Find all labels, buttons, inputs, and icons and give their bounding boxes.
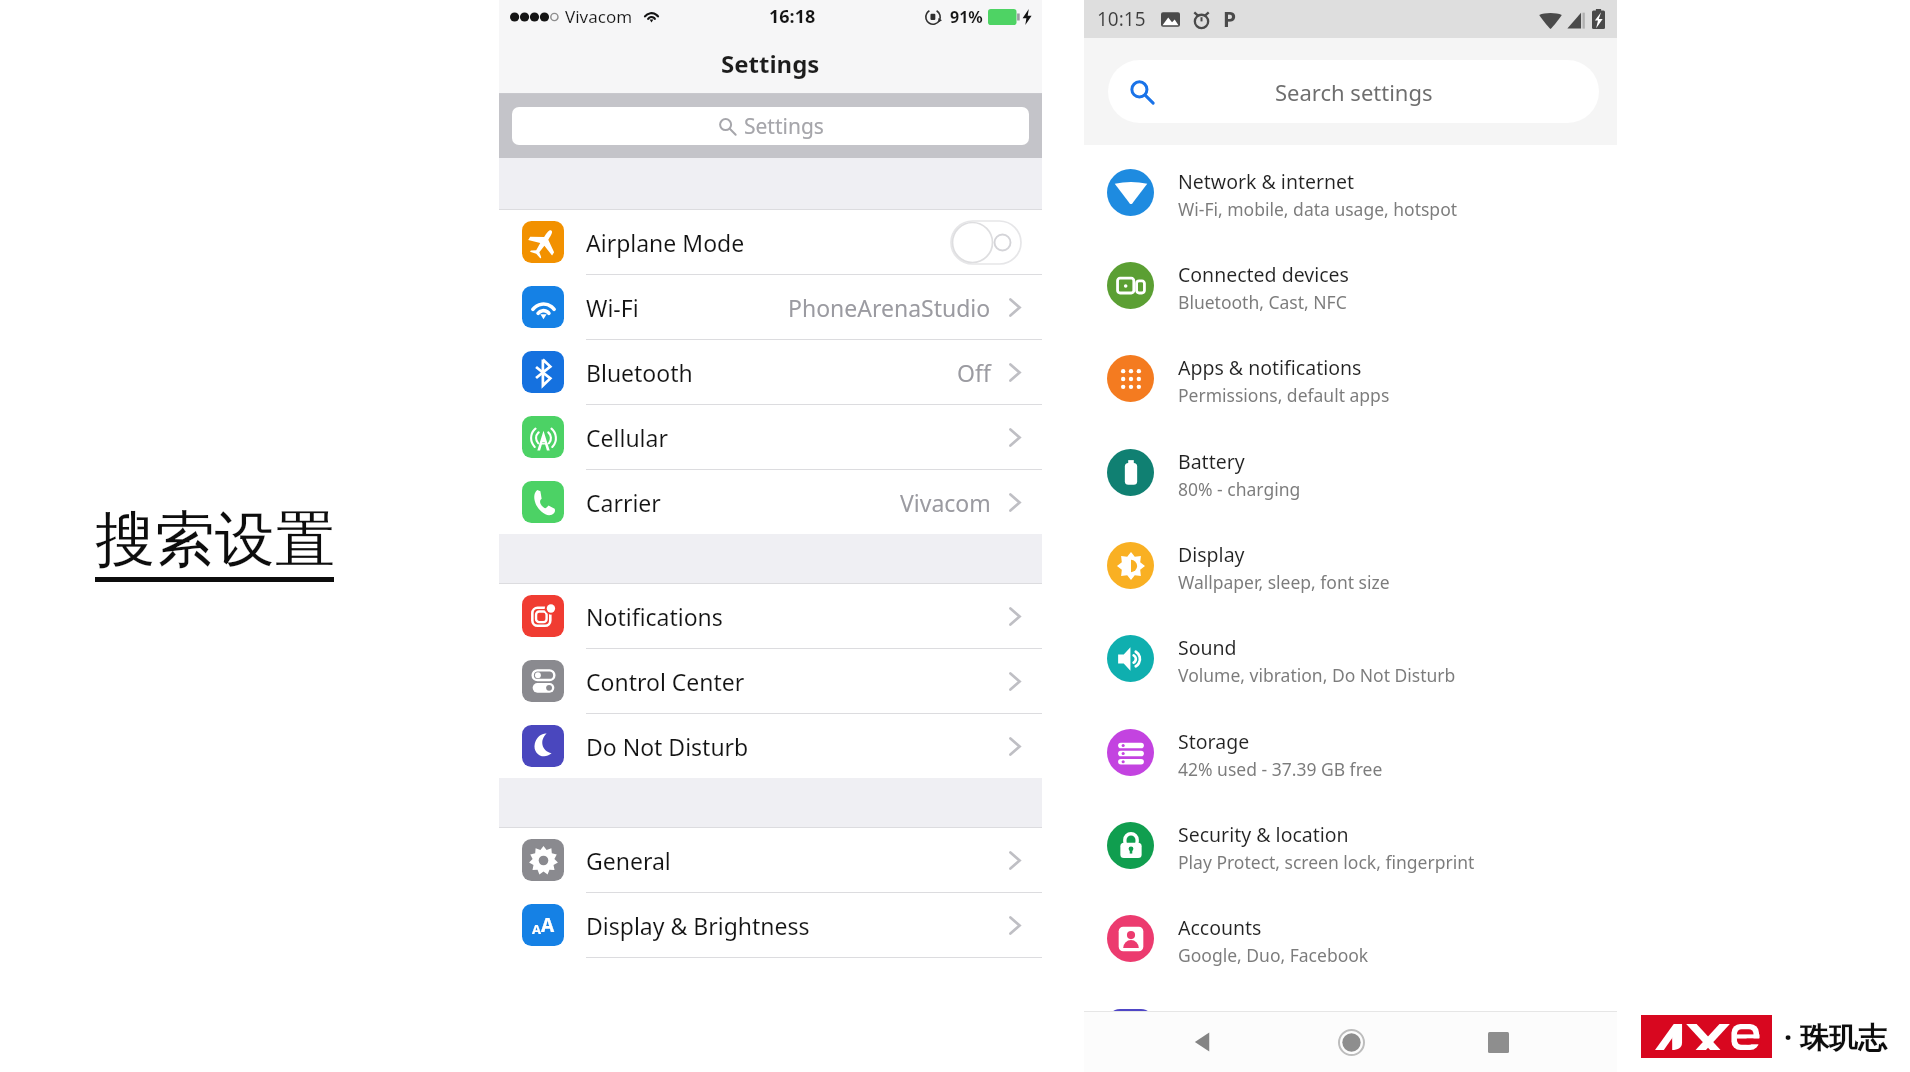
button[interactable]: A <box>499 893 1042 958</box>
staticText: Wallpaper, sleep, font size <box>1178 570 1390 594</box>
button[interactable]: Recents <box>1469 1013 1527 1071</box>
staticText: Sound <box>1178 634 1237 661</box>
staticText: Storage <box>1178 728 1250 755</box>
button[interactable]: Airplane Mode <box>499 210 1042 275</box>
staticText: Connected devices <box>1178 261 1349 288</box>
staticText: Airplane Mode <box>586 227 745 258</box>
staticText: Permissions, default apps <box>1178 383 1390 407</box>
button[interactable]: Connected devices <box>1084 239 1617 332</box>
staticText: Bluetooth, Cast, NFC <box>1178 290 1347 314</box>
staticText: A <box>532 920 541 938</box>
staticText: Wi-Fi, mobile, data usage, hotspot <box>1178 197 1458 221</box>
staticText: Off <box>957 357 991 388</box>
staticText: P <box>1223 5 1237 34</box>
button[interactable]: Notifications <box>499 584 1042 649</box>
button[interactable]: Display <box>1084 519 1617 612</box>
staticText: PhoneArenaStudio <box>788 292 991 323</box>
staticText: Security & location <box>1178 821 1349 848</box>
staticText: Apps & notifications <box>1178 354 1362 381</box>
staticText: Control Center <box>586 666 745 697</box>
button[interactable]: Back <box>1174 1013 1232 1071</box>
staticText: 91% <box>950 6 983 28</box>
staticText: Carrier <box>586 487 661 518</box>
staticText: Google, Duo, Facebook <box>1178 943 1369 967</box>
staticText: Search settings <box>1275 77 1433 107</box>
staticText: 42% used - 37.39 GB free <box>1178 757 1383 781</box>
staticText: Display <box>1178 541 1245 568</box>
button[interactable]: Control Center <box>499 649 1042 714</box>
button[interactable]: General <box>499 828 1042 893</box>
button[interactable]: Apps & notifications <box>1084 332 1617 425</box>
button[interactable]: Cellular <box>499 405 1042 470</box>
button[interactable]: Home <box>1322 1013 1380 1071</box>
button[interactable]: Do Not Disturb <box>499 714 1042 778</box>
staticText: Volume, vibration, Do Not Disturb <box>1178 663 1456 687</box>
button[interactable]: Wi-Fi <box>499 275 1042 340</box>
staticText: Vivacom <box>900 487 991 518</box>
button[interactable]: Accounts <box>1084 892 1617 985</box>
staticText: · 珠玑志 <box>1784 1017 1887 1057</box>
button[interactable]: Sound <box>1084 612 1617 705</box>
staticText: Cellular <box>586 422 668 453</box>
staticText: 10:15 <box>1097 6 1146 32</box>
staticText: 80% - charging <box>1178 477 1301 501</box>
button[interactable]: Network & internet <box>1084 145 1617 239</box>
staticText: General <box>586 845 671 876</box>
button[interactable]: Search settings <box>1108 60 1599 123</box>
staticText: Settings <box>721 47 820 80</box>
staticText: Settings <box>744 112 824 141</box>
staticText: Display & Brightness <box>586 910 810 941</box>
staticText: Notifications <box>586 601 723 632</box>
staticText: Bluetooth <box>586 357 693 388</box>
staticText: Battery <box>1178 448 1245 475</box>
staticText: 16:18 <box>769 4 816 29</box>
staticText: Play Protect, screen lock, fingerprint <box>1178 850 1475 874</box>
staticText: Network & internet <box>1178 168 1355 195</box>
staticText: 搜索设置 <box>95 502 335 578</box>
button[interactable]: Battery <box>1084 425 1617 519</box>
staticText: A <box>541 912 555 938</box>
button[interactable]: Search Settings <box>512 107 1029 145</box>
staticText: Vivacom <box>565 5 633 28</box>
staticText: Do Not Disturb <box>586 731 749 762</box>
button[interactable]: Carrier <box>499 470 1042 534</box>
button[interactable]: Storage <box>1084 705 1617 799</box>
button[interactable]: Security & location <box>1084 799 1617 892</box>
staticText: Wi-Fi <box>586 292 639 323</box>
staticText: Accounts <box>1178 914 1262 941</box>
button[interactable]: Bluetooth <box>499 340 1042 405</box>
